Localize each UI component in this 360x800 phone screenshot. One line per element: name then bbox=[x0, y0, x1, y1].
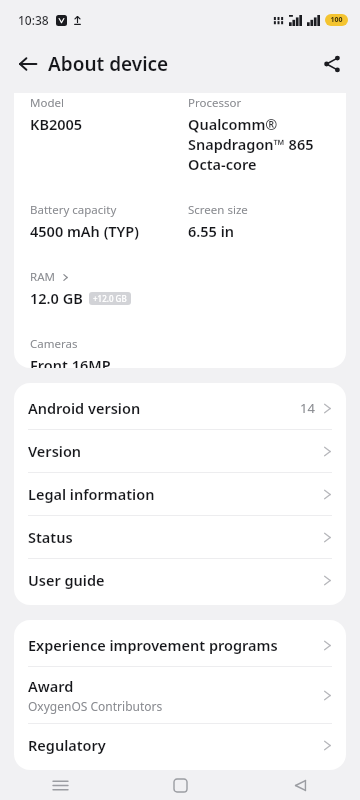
staticText: KB2005 bbox=[30, 114, 83, 134]
button[interactable]: Regulatory bbox=[14, 724, 346, 766]
staticText: Award bbox=[28, 676, 74, 696]
staticText: OxygenOS Contributors bbox=[28, 698, 163, 714]
button[interactable]: Back bbox=[240, 770, 360, 800]
staticText: RAM bbox=[30, 269, 55, 285]
staticText: Legal information bbox=[28, 484, 155, 504]
button[interactable]: Share bbox=[312, 44, 352, 84]
staticText: Status bbox=[28, 527, 73, 547]
button[interactable]: Experience improvement programs bbox=[14, 624, 346, 666]
button[interactable]: Home bbox=[120, 770, 240, 800]
staticText: Battery capacity bbox=[30, 202, 117, 218]
staticText: 14 bbox=[300, 399, 315, 417]
staticText: Octa-core bbox=[188, 154, 257, 174]
staticText: Regulatory bbox=[28, 735, 106, 755]
staticText: Processor bbox=[188, 95, 242, 111]
staticText: +12.0 GB bbox=[93, 293, 127, 304]
staticText: Experience improvement programs bbox=[28, 635, 278, 655]
button[interactable]: RAM bbox=[14, 267, 346, 310]
staticText: 12.0 GB bbox=[30, 288, 83, 308]
staticText: User guide bbox=[28, 570, 105, 590]
staticText: 4500 mAh (TYP) bbox=[30, 221, 139, 241]
staticText: Model bbox=[30, 95, 64, 111]
button[interactable]: Recent apps bbox=[0, 770, 120, 800]
staticText: 100 bbox=[330, 15, 343, 25]
button[interactable]: Award bbox=[14, 667, 346, 723]
button[interactable]: Version bbox=[14, 430, 346, 472]
staticText: 10:38 bbox=[18, 12, 49, 28]
staticText: Screen size bbox=[188, 202, 248, 218]
staticText: Front 16MP bbox=[30, 355, 111, 368]
staticText: Snapdragon™ 865 bbox=[188, 134, 314, 154]
staticText: Android version bbox=[28, 398, 141, 418]
button[interactable]: Legal information bbox=[14, 473, 346, 515]
button[interactable]: User guide bbox=[14, 559, 346, 601]
staticText: About device bbox=[48, 51, 169, 77]
staticText: 6.55 in bbox=[188, 221, 235, 241]
staticText: Version bbox=[28, 441, 82, 461]
button[interactable]: Android version bbox=[14, 387, 346, 429]
button[interactable]: Back bbox=[8, 44, 48, 84]
staticText: Cameras bbox=[30, 336, 78, 352]
button[interactable]: Status bbox=[14, 516, 346, 558]
staticText: Qualcomm® bbox=[188, 114, 278, 134]
